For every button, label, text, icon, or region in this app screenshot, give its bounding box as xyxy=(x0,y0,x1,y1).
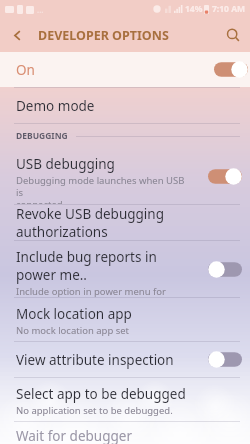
staticText: 7:10 AM xyxy=(212,3,246,15)
staticText: No application set to be debugged. xyxy=(16,404,173,417)
button[interactable]: Wait for debugger xyxy=(0,422,250,444)
button[interactable]: USB debugging xyxy=(0,148,250,204)
staticText: Include option in power menu for taking … xyxy=(16,285,192,297)
button[interactable]: Toggle on xyxy=(214,61,248,78)
staticText: 14% xyxy=(185,3,203,15)
button[interactable]: On xyxy=(0,52,250,87)
staticText: Select app to be debugged xyxy=(16,385,186,403)
button[interactable]: Toggle off xyxy=(208,261,242,278)
staticText: No mock location app set xyxy=(16,324,130,337)
button[interactable]: Mock location app xyxy=(0,298,250,341)
staticText: Mock location app xyxy=(16,305,132,323)
button[interactable]: Search xyxy=(216,18,250,52)
staticText: DEBUGGING xyxy=(16,130,68,142)
staticText: View attribute inspection xyxy=(16,351,174,369)
staticText: ... xyxy=(37,4,44,15)
button[interactable]: View attribute inspection xyxy=(0,342,250,377)
staticText: On xyxy=(16,61,35,79)
staticText: Wait for debugger xyxy=(16,427,132,444)
button[interactable]: Revoke USB debugging authorizations xyxy=(0,205,250,240)
button[interactable]: Demo mode xyxy=(0,88,250,123)
button[interactable]: Toggle on xyxy=(208,168,242,185)
staticText: DEVELOPER OPTIONS xyxy=(38,27,169,44)
button[interactable]: Toggle off xyxy=(208,351,242,368)
staticText: Demo mode xyxy=(16,97,95,115)
staticText: Debugging mode launches when USB is conn… xyxy=(16,174,192,204)
staticText: Include bug reports in power me.. xyxy=(16,248,192,284)
staticText: Revoke USB debugging authorizations xyxy=(16,205,238,240)
button[interactable]: Back xyxy=(0,18,34,52)
button[interactable]: Select app to be debugged xyxy=(0,378,250,421)
button[interactable]: Include bug reports in power me.. xyxy=(0,241,250,297)
staticText: USB debugging xyxy=(16,155,115,173)
